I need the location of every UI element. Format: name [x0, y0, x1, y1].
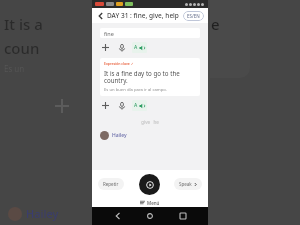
staticText: Hailey [26, 206, 59, 221]
button[interactable]: Add [100, 100, 111, 111]
button[interactable]: Add [100, 42, 111, 53]
staticText: e [211, 14, 220, 34]
staticText: Hailey [112, 132, 127, 139]
staticText: Speak [179, 181, 192, 187]
button[interactable]: Back [111, 209, 125, 223]
button[interactable]: Listen [132, 100, 147, 111]
staticText: Repetir [103, 181, 119, 187]
staticText: A [134, 102, 138, 109]
staticText: Es un buen día para ir al campo. [104, 87, 167, 93]
staticText: It is a [4, 14, 43, 34]
staticText: Es un [4, 63, 25, 74]
button[interactable]: Speak [174, 178, 202, 190]
button[interactable]: Recents [176, 209, 190, 223]
button[interactable]: Expresión clave ✓ [100, 58, 200, 96]
button[interactable]: Home [143, 209, 157, 223]
staticText: coun [4, 38, 40, 58]
staticText: A [134, 44, 138, 51]
staticText: Expresión clave ✓ [104, 61, 134, 66]
button[interactable]: Play [139, 174, 160, 195]
button[interactable]: Hailey [100, 131, 200, 140]
button[interactable]: Menú [92, 198, 208, 207]
button[interactable]: Listen [132, 42, 147, 53]
button[interactable]: Microphone [116, 42, 127, 53]
staticText: It is a fine day to go to the country. [104, 69, 196, 85]
button[interactable]: fine [100, 28, 200, 38]
staticText: DAY 31 : fine, give, help [107, 11, 179, 20]
staticText: fine [104, 30, 114, 37]
staticText: ES/EN [187, 13, 200, 19]
button[interactable]: ES/EN [183, 11, 204, 21]
staticText: Menú [147, 200, 160, 206]
button[interactable]: Back [96, 11, 105, 20]
button[interactable]: Repetir [98, 178, 124, 190]
button[interactable]: Microphone [116, 100, 127, 111]
staticText: give he [100, 119, 200, 125]
